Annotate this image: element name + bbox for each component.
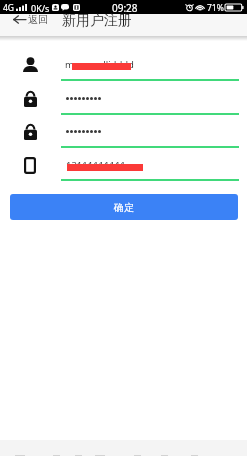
staticText: 09:28 — [112, 1, 138, 15]
button[interactable]: 确定 — [10, 194, 238, 220]
button[interactable] — [20, 152, 240, 182]
staticText: 71% — [207, 2, 224, 14]
staticText: 返回 — [28, 13, 48, 25]
staticText: 0K/s — [31, 2, 50, 14]
button[interactable]: 返回 — [13, 13, 57, 25]
staticText: 确定 — [114, 201, 134, 214]
staticText: 新用户注册 — [62, 12, 132, 30]
button[interactable] — [20, 119, 240, 149]
button[interactable] — [20, 52, 240, 82]
staticText: 4G — [3, 2, 15, 14]
staticText: mnnnnnllidddd — [65, 58, 134, 71]
staticText: 13111111111 — [66, 159, 126, 172]
button[interactable] — [20, 85, 240, 115]
